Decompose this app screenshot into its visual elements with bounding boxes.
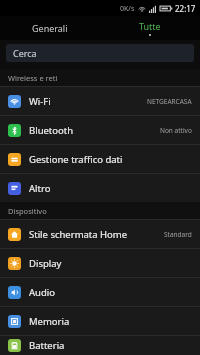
staticText: Altro <box>29 182 51 195</box>
button[interactable]: Display <box>0 249 200 277</box>
staticText: Cerca <box>13 47 37 59</box>
staticText: Memoria <box>29 315 70 328</box>
button[interactable]: Wi-Fi <box>0 87 200 115</box>
staticText: Wireless e reti <box>8 73 58 83</box>
staticText: NETGEARCASA <box>147 97 192 106</box>
staticText: Gestione traffico dati <box>29 153 123 166</box>
staticText: Batteria <box>29 339 65 352</box>
staticText: Stile schermata Home <box>29 228 128 241</box>
staticText: Tutte <box>139 20 161 32</box>
button[interactable]: Batteria <box>0 336 200 355</box>
button[interactable]: Audio <box>0 278 200 306</box>
staticText: Audio <box>29 286 55 299</box>
button[interactable]: Gestione traffico dati <box>0 145 200 173</box>
staticText: 0K/s <box>120 4 135 14</box>
button[interactable]: Generali <box>0 16 100 40</box>
staticText: Bluetooth <box>29 124 74 137</box>
button[interactable]: Cerca <box>6 44 194 62</box>
button[interactable]: Bluetooth <box>0 116 200 144</box>
staticText: Wi-Fi <box>29 95 51 108</box>
staticText: Dispositivo <box>8 206 47 216</box>
button[interactable]: Stile schermata Home <box>0 220 200 248</box>
staticText: Standard <box>164 230 192 239</box>
button[interactable]: Altro <box>0 174 200 202</box>
button[interactable]: Memoria <box>0 307 200 335</box>
button[interactable]: Tutte <box>100 16 200 40</box>
staticText: Non attivo <box>160 126 192 135</box>
staticText: Display <box>29 257 62 270</box>
staticText: 22:17 <box>175 3 196 14</box>
staticText: Generali <box>32 22 68 34</box>
